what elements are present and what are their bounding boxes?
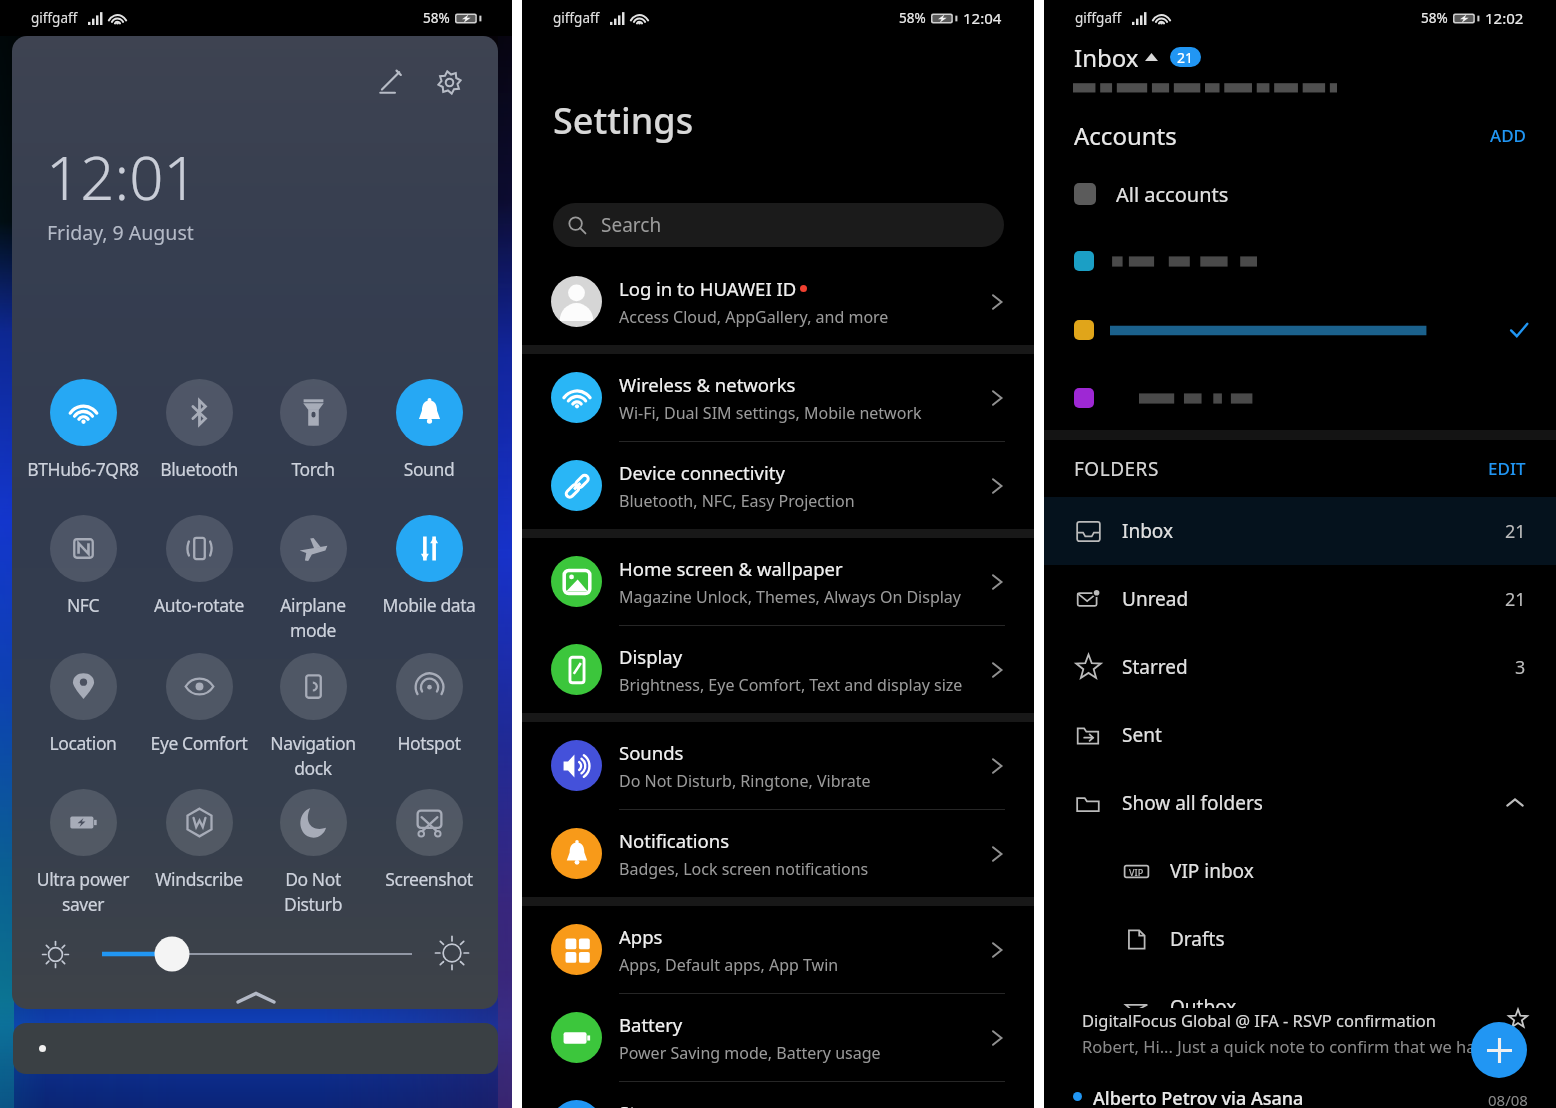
- staticText: Do Not Disturb, Ringtone, Vibrate: [619, 770, 871, 792]
- staticText: Starred: [1122, 654, 1515, 680]
- staticText: Navigation dock: [253, 731, 373, 761]
- staticText: Show all folders: [1122, 790, 1504, 816]
- staticText: Badges, Lock screen notifications: [619, 858, 869, 880]
- staticText: 12:01: [46, 136, 198, 218]
- staticText: Airplane mode: [253, 593, 373, 623]
- button[interactable]: [13, 1023, 498, 1074]
- button[interactable]: [1044, 387, 1556, 409]
- button[interactable]: Auto-rotate: [139, 515, 259, 623]
- staticText: VIP: [1129, 866, 1144, 878]
- button[interactable]: Log in to HUAWEI ID: [522, 258, 1034, 345]
- button[interactable]: Location: [23, 653, 143, 761]
- staticText: Outbox: [1170, 994, 1526, 1020]
- button[interactable]: VIP: [1044, 837, 1556, 905]
- staticText: 58%: [423, 9, 450, 27]
- staticText: All accounts: [1116, 181, 1229, 208]
- staticText: Battery: [619, 1012, 683, 1037]
- button[interactable]: Wireless & networks: [522, 354, 1034, 442]
- staticText: Screenshot: [369, 867, 489, 891]
- staticText: ADD: [1490, 124, 1526, 147]
- button[interactable]: Show all folders: [1044, 769, 1556, 837]
- button[interactable]: Device connectivity: [522, 442, 1034, 529]
- button[interactable]: Home screen & wallpaper: [522, 538, 1034, 626]
- button[interactable]: Sent: [1044, 701, 1556, 769]
- button[interactable]: Sounds: [522, 722, 1034, 810]
- button[interactable]: Windscribe: [139, 789, 259, 897]
- staticText: Accounts: [1074, 119, 1482, 152]
- staticText: Device connectivity: [619, 460, 785, 485]
- button[interactable]: Apps: [522, 906, 1034, 994]
- staticText: Brightness, Eye Comfort, Text and displa…: [619, 674, 963, 696]
- button[interactable]: BTHub6-7QR8: [23, 379, 143, 487]
- button[interactable]: Bluetooth: [139, 379, 259, 487]
- staticText: Power Saving mode, Battery usage: [619, 1042, 881, 1064]
- staticText: Storage: [619, 1100, 687, 1108]
- staticText: NFC: [23, 593, 143, 617]
- staticText: BTHub6-7QR8: [23, 457, 143, 481]
- staticText: FOLDERS: [1074, 456, 1480, 482]
- staticText: VIP inbox: [1170, 858, 1526, 884]
- button[interactable]: Ultra power saver: [23, 789, 143, 897]
- button[interactable]: Unread: [1044, 565, 1556, 633]
- staticText: Wireless & networks: [619, 372, 796, 397]
- button[interactable]: Notifications: [522, 810, 1034, 897]
- button[interactable]: Storage: [522, 1082, 1034, 1108]
- button[interactable]: [1044, 250, 1556, 272]
- button[interactable]: NFC: [23, 515, 143, 623]
- staticText: Friday, 9 August: [47, 219, 194, 246]
- staticText: Access Cloud, AppGallery, and more: [619, 306, 889, 328]
- button[interactable]: Eye Comfort: [139, 653, 259, 761]
- staticText: Sound: [369, 457, 489, 481]
- staticText: giffgaff: [1075, 9, 1122, 27]
- staticText: Sounds: [619, 740, 684, 765]
- staticText: Magazine Unlock, Themes, Always On Displ…: [619, 586, 962, 608]
- button[interactable]: Airplane mode: [253, 515, 373, 623]
- staticText: Log in to HUAWEI ID: [619, 276, 797, 301]
- button[interactable]: Compose: [1471, 1022, 1527, 1078]
- staticText: Drafts: [1170, 926, 1526, 952]
- staticText: Inbox: [1074, 41, 1139, 74]
- staticText: DigitalFocus Global @ IFA - RSVP confirm…: [1082, 1009, 1437, 1031]
- button[interactable]: Outbox: [1044, 973, 1556, 1041]
- button[interactable]: Starred: [1044, 633, 1556, 701]
- button[interactable]: [1044, 319, 1556, 341]
- staticText: 58%: [1421, 9, 1448, 27]
- button[interactable]: Inbox: [1074, 40, 1556, 74]
- staticText: 12:02: [1485, 8, 1524, 28]
- staticText: Inbox: [1122, 518, 1505, 544]
- button[interactable]: Do Not Disturb: [253, 789, 373, 897]
- button[interactable]: Mobile data: [369, 515, 489, 623]
- button[interactable]: Screenshot: [369, 789, 489, 897]
- button[interactable]: ADD: [1482, 119, 1534, 152]
- staticText: 08/08: [1488, 1090, 1528, 1108]
- staticText: Settings: [553, 96, 694, 145]
- staticText: Hotspot: [369, 731, 489, 755]
- button[interactable]: Drafts: [1044, 905, 1556, 973]
- staticText: Bluetooth: [139, 457, 259, 481]
- staticText: Do Not Disturb: [253, 867, 373, 897]
- button[interactable]: Display: [522, 626, 1034, 713]
- staticText: Notifications: [619, 828, 730, 853]
- button[interactable]: Edit: [367, 60, 411, 104]
- staticText: 12:04: [963, 8, 1002, 28]
- button[interactable]: Search: [553, 203, 1004, 247]
- button[interactable]: Hotspot: [369, 653, 489, 761]
- button[interactable]: All accounts: [1044, 176, 1556, 212]
- button[interactable]: Battery: [522, 994, 1034, 1082]
- button[interactable]: Navigation dock: [253, 653, 373, 761]
- staticText: Unread: [1122, 586, 1505, 612]
- button[interactable]: Torch: [253, 379, 373, 487]
- button[interactable]: EDIT: [1480, 452, 1534, 485]
- staticText: Auto-rotate: [139, 593, 259, 617]
- staticText: Eye Comfort: [139, 731, 259, 755]
- staticText: Search: [601, 212, 662, 238]
- button[interactable]: Inbox: [1044, 497, 1556, 565]
- staticText: Alberto Petrov via Asana: [1093, 1086, 1304, 1108]
- button[interactable]: Sound: [369, 379, 489, 487]
- button[interactable]: Settings: [427, 60, 471, 104]
- staticText: Display: [619, 644, 683, 669]
- staticText: Mobile data: [369, 593, 489, 617]
- staticText: Wi-Fi, Dual SIM settings, Mobile network: [619, 402, 922, 424]
- staticText: 21: [1505, 519, 1526, 544]
- staticText: Apps: [619, 924, 663, 949]
